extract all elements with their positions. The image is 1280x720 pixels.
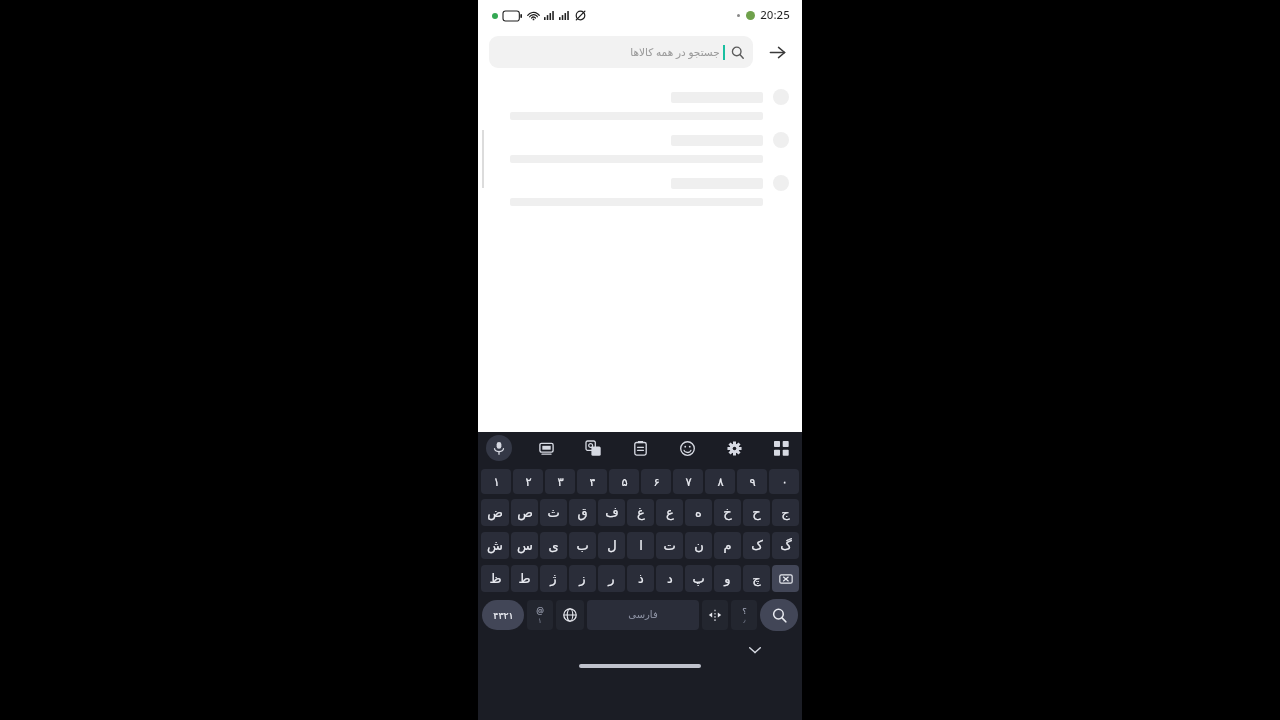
button[interactable]: Change language	[556, 600, 584, 630]
staticText: ت	[663, 538, 676, 553]
staticText: غ	[637, 505, 645, 520]
button[interactable]: ک	[743, 532, 770, 559]
button[interactable]: Settings	[721, 435, 747, 461]
button[interactable]: ض	[481, 499, 509, 526]
button[interactable]: Translate	[580, 435, 606, 461]
button[interactable]: ؟	[731, 600, 757, 630]
staticText: ا	[639, 538, 643, 553]
button[interactable]: س	[511, 532, 538, 559]
staticText: و	[724, 571, 731, 586]
button[interactable]: ژ	[540, 565, 567, 592]
staticText: 20:25	[760, 7, 790, 23]
staticText: س	[517, 538, 533, 553]
button[interactable]: ج	[772, 499, 799, 526]
staticText: ٫	[743, 616, 746, 624]
staticText: د	[667, 571, 673, 586]
button[interactable]: Backspace	[772, 565, 799, 592]
button[interactable]: Back	[763, 38, 791, 66]
staticText: ژ	[550, 571, 557, 586]
staticText: ل	[607, 538, 617, 553]
staticText: ث	[547, 505, 560, 520]
button[interactable]: و	[714, 565, 741, 592]
staticText: ۵	[621, 475, 628, 488]
button[interactable]: چ	[743, 565, 770, 592]
button[interactable]: Search	[760, 599, 798, 631]
button[interactable]: خ	[714, 499, 741, 526]
button[interactable]: ۳	[545, 469, 575, 494]
button[interactable]: Clipboard	[627, 435, 653, 461]
button[interactable]: Emoji	[674, 435, 700, 461]
button[interactable]: ه	[685, 499, 712, 526]
button[interactable]: More options	[768, 435, 794, 461]
button[interactable]: ز	[569, 565, 596, 592]
staticText: ی	[548, 538, 559, 553]
button[interactable]: ت	[656, 532, 683, 559]
button[interactable]: ط	[511, 565, 538, 592]
button[interactable]: ی	[540, 532, 567, 559]
button[interactable]: ف	[598, 499, 625, 526]
button[interactable]: Hide keyboard	[744, 639, 766, 661]
button[interactable]: ۷	[673, 469, 703, 494]
button[interactable]: ذ	[627, 565, 654, 592]
button[interactable]: ظ	[481, 565, 509, 592]
button[interactable]: ۴۳۲۱	[482, 600, 524, 630]
staticText: ظ	[489, 571, 502, 586]
staticText: پ	[692, 571, 705, 586]
button[interactable]: ث	[540, 499, 567, 526]
button[interactable]: Sticker keyboard	[533, 435, 559, 461]
button[interactable]: جستجو در همه کالاها	[489, 36, 753, 68]
button[interactable]: فارسی	[587, 600, 699, 630]
button[interactable]: ن	[685, 532, 712, 559]
staticText: ز	[579, 571, 586, 586]
button[interactable]: ۲	[513, 469, 543, 494]
button[interactable]: ۰	[769, 469, 799, 494]
staticText: ط	[518, 571, 531, 586]
staticText: ۲	[525, 475, 532, 488]
staticText: ۷	[685, 475, 692, 488]
staticText: ۶	[653, 475, 660, 488]
button[interactable]: ق	[569, 499, 596, 526]
staticText: ه	[695, 505, 702, 520]
staticText: ح	[752, 505, 761, 520]
button[interactable]: ش	[481, 532, 509, 559]
staticText: ذ	[638, 571, 644, 586]
staticText: ض	[487, 505, 503, 520]
staticText: م	[723, 538, 732, 553]
button[interactable]: ۱	[481, 469, 511, 494]
staticText: ق	[577, 505, 588, 520]
button[interactable]: ص	[511, 499, 538, 526]
button[interactable]: @	[527, 600, 553, 630]
staticText: ۴۳۲۱	[493, 610, 514, 621]
staticText: گ	[780, 538, 792, 553]
staticText: خ	[723, 505, 732, 520]
button[interactable]: ر	[598, 565, 625, 592]
button[interactable]: ۴	[577, 469, 607, 494]
staticText: ک	[751, 538, 763, 553]
staticText: ۸	[717, 475, 724, 488]
staticText: ع	[666, 505, 674, 520]
button[interactable]: Voice input	[486, 435, 512, 461]
button[interactable]: ل	[598, 532, 625, 559]
button[interactable]: ۶	[641, 469, 671, 494]
staticText: ۴	[589, 475, 596, 488]
button[interactable]: ۹	[737, 469, 767, 494]
staticText: ۰	[781, 475, 788, 488]
staticText: ۱	[493, 475, 500, 488]
staticText: ؟	[742, 606, 747, 616]
button[interactable]: ب	[569, 532, 596, 559]
button[interactable]: غ	[627, 499, 654, 526]
button[interactable]: م	[714, 532, 741, 559]
staticText: ن	[694, 538, 704, 553]
button[interactable]: پ	[685, 565, 712, 592]
staticText: ۹	[749, 475, 756, 488]
button[interactable]: Move cursor	[702, 600, 728, 630]
button[interactable]: گ	[772, 532, 799, 559]
button[interactable]: ۵	[609, 469, 639, 494]
button[interactable]: ا	[627, 532, 654, 559]
staticText: ۳	[557, 475, 564, 488]
button[interactable]: ع	[656, 499, 683, 526]
button[interactable]: ۸	[705, 469, 735, 494]
staticText: جستجو در همه کالاها	[630, 45, 720, 59]
button[interactable]: ح	[743, 499, 770, 526]
button[interactable]: د	[656, 565, 683, 592]
